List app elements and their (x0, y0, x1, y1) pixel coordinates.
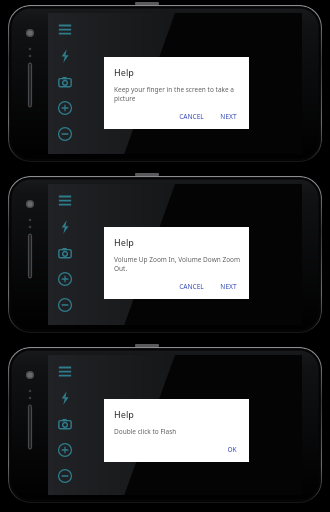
button[interactable]: Zoom in (54, 268, 76, 290)
button[interactable]: Zoom in (54, 97, 76, 119)
staticText: Help (114, 236, 134, 248)
button[interactable]: Zoom out (54, 465, 76, 487)
button[interactable]: Menu (54, 19, 76, 41)
button[interactable]: Flash (54, 45, 76, 67)
button[interactable]: Menu (54, 190, 76, 212)
button[interactable]: Zoom in (54, 439, 76, 461)
staticText: Help (114, 66, 134, 78)
button[interactable]: Menu (54, 361, 76, 383)
button[interactable]: NEXT (216, 110, 241, 123)
button[interactable]: Zoom out (54, 294, 76, 316)
button[interactable]: Camera (54, 242, 76, 264)
staticText: CANCEL (179, 112, 204, 121)
staticText: OK (227, 445, 237, 454)
staticText: Keep your finger in the screen to take a… (114, 85, 241, 103)
staticText: Help (114, 408, 134, 420)
button[interactable]: NEXT (216, 280, 241, 293)
button[interactable]: Camera (54, 71, 76, 93)
staticText: NEXT (220, 282, 237, 291)
staticText: Double click to Flash (114, 427, 177, 436)
staticText: CANCEL (179, 282, 204, 291)
staticText: NEXT (220, 112, 237, 121)
button[interactable]: Flash (54, 387, 76, 409)
button[interactable]: Camera (54, 413, 76, 435)
staticText: Volume Up Zoom In, Volume Down Zoom Out. (114, 255, 241, 273)
button[interactable]: CANCEL (175, 110, 208, 123)
button[interactable]: CANCEL (175, 280, 208, 293)
button[interactable]: Zoom out (54, 123, 76, 145)
button[interactable]: Flash (54, 216, 76, 238)
button[interactable]: OK (223, 443, 241, 456)
